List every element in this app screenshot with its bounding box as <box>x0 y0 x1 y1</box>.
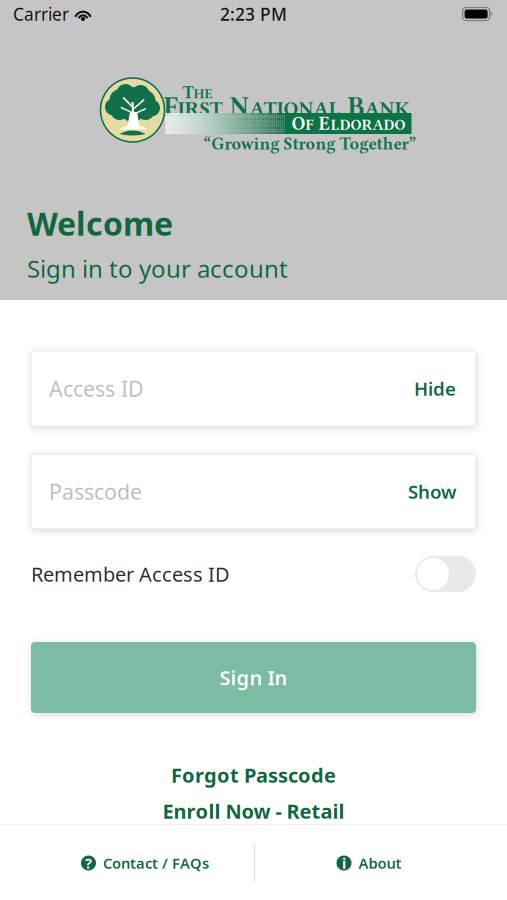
button[interactable]: Forgot Passcode <box>31 762 476 788</box>
staticText: Sign In <box>219 664 287 691</box>
staticText: Remember Access ID <box>31 561 230 587</box>
button[interactable]: Remember Access ID <box>415 556 476 592</box>
staticText: Sign in to your account <box>27 252 288 284</box>
button[interactable]: i <box>255 825 507 900</box>
button[interactable]: Show <box>408 479 456 504</box>
button[interactable]: Hide <box>414 376 456 401</box>
staticText: Welcome <box>27 202 173 244</box>
staticText: Carrier <box>13 2 69 25</box>
staticText: i <box>342 853 346 873</box>
staticText: THE <box>182 83 212 102</box>
staticText: Forgot Passcode <box>171 762 336 788</box>
staticText: 2:23 PM <box>220 2 287 25</box>
staticText: “Growing Strong Together” <box>203 134 416 154</box>
button[interactable]: Sign In <box>31 642 476 713</box>
staticText: Enroll Now - Retail <box>162 798 344 824</box>
staticText: OF ELDORADO <box>291 113 405 134</box>
staticText: About <box>358 853 401 873</box>
staticText: ? <box>85 853 92 873</box>
staticText: Passcode <box>49 477 142 506</box>
button[interactable]: ? <box>0 825 254 900</box>
button[interactable]: Enroll Now - Retail <box>31 798 476 824</box>
staticText: FIRST NATIONAL BANK <box>163 92 409 121</box>
staticText: Access ID <box>49 374 144 403</box>
staticText: Contact / FAQs <box>103 853 209 873</box>
staticText: Hide <box>414 376 456 401</box>
staticText: Show <box>408 479 456 504</box>
